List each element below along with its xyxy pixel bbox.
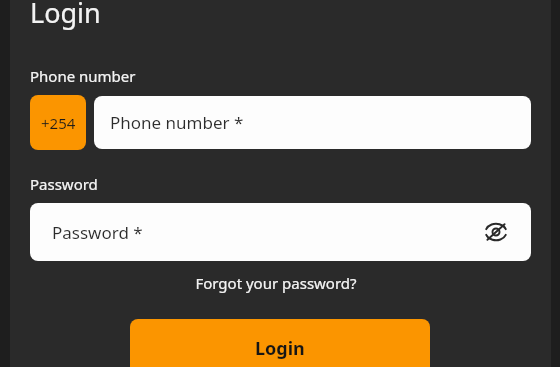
staticText: Forgot your password? xyxy=(195,273,357,293)
staticText: Phone number * xyxy=(110,111,244,134)
button[interactable]: +254 xyxy=(30,95,86,150)
button[interactable]: Forgot your password? xyxy=(10,270,541,296)
staticText: +254 xyxy=(41,113,76,133)
staticText: Password * xyxy=(52,221,143,244)
staticText: Password xyxy=(30,174,98,194)
staticText: Login xyxy=(255,336,305,361)
button[interactable]: Login xyxy=(130,319,430,367)
button[interactable]: Show password xyxy=(480,216,512,248)
staticText: Phone number xyxy=(30,66,136,86)
button[interactable]: Password * xyxy=(30,203,531,261)
staticText: Login xyxy=(30,0,101,31)
button[interactable]: Phone number * xyxy=(94,96,531,149)
